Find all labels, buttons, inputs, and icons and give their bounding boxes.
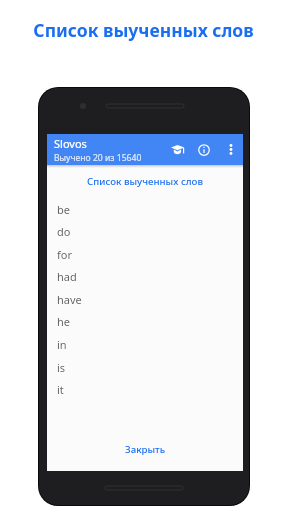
- staticText: he: [57, 314, 71, 329]
- staticText: for: [57, 247, 72, 262]
- button[interactable]: do: [47, 220, 243, 242]
- button[interactable]: it: [47, 378, 243, 400]
- staticText: Закрыть: [125, 443, 166, 456]
- button[interactable]: is: [47, 356, 243, 378]
- staticText: Выучено 20 из 15640: [54, 152, 142, 164]
- button[interactable]: Learn words: [165, 137, 190, 162]
- button[interactable]: for: [47, 243, 243, 265]
- button[interactable]: had: [47, 265, 243, 287]
- button[interactable]: in: [47, 333, 243, 355]
- staticText: it: [57, 382, 64, 397]
- button[interactable]: have: [47, 288, 243, 310]
- staticText: in: [57, 337, 67, 352]
- staticText: is: [57, 360, 66, 375]
- button[interactable]: be: [47, 198, 243, 220]
- button[interactable]: Закрыть: [113, 439, 178, 460]
- staticText: have: [57, 292, 82, 307]
- staticText: do: [57, 224, 71, 239]
- staticText: Список выученных слов: [47, 175, 243, 188]
- button[interactable]: he: [47, 310, 243, 332]
- button[interactable]: More options: [218, 137, 243, 162]
- button[interactable]: Info: [191, 137, 216, 162]
- staticText: had: [57, 269, 77, 284]
- staticText: Slovos: [54, 136, 87, 151]
- staticText: be: [57, 202, 70, 217]
- staticText: Список выученных слов: [0, 18, 287, 42]
